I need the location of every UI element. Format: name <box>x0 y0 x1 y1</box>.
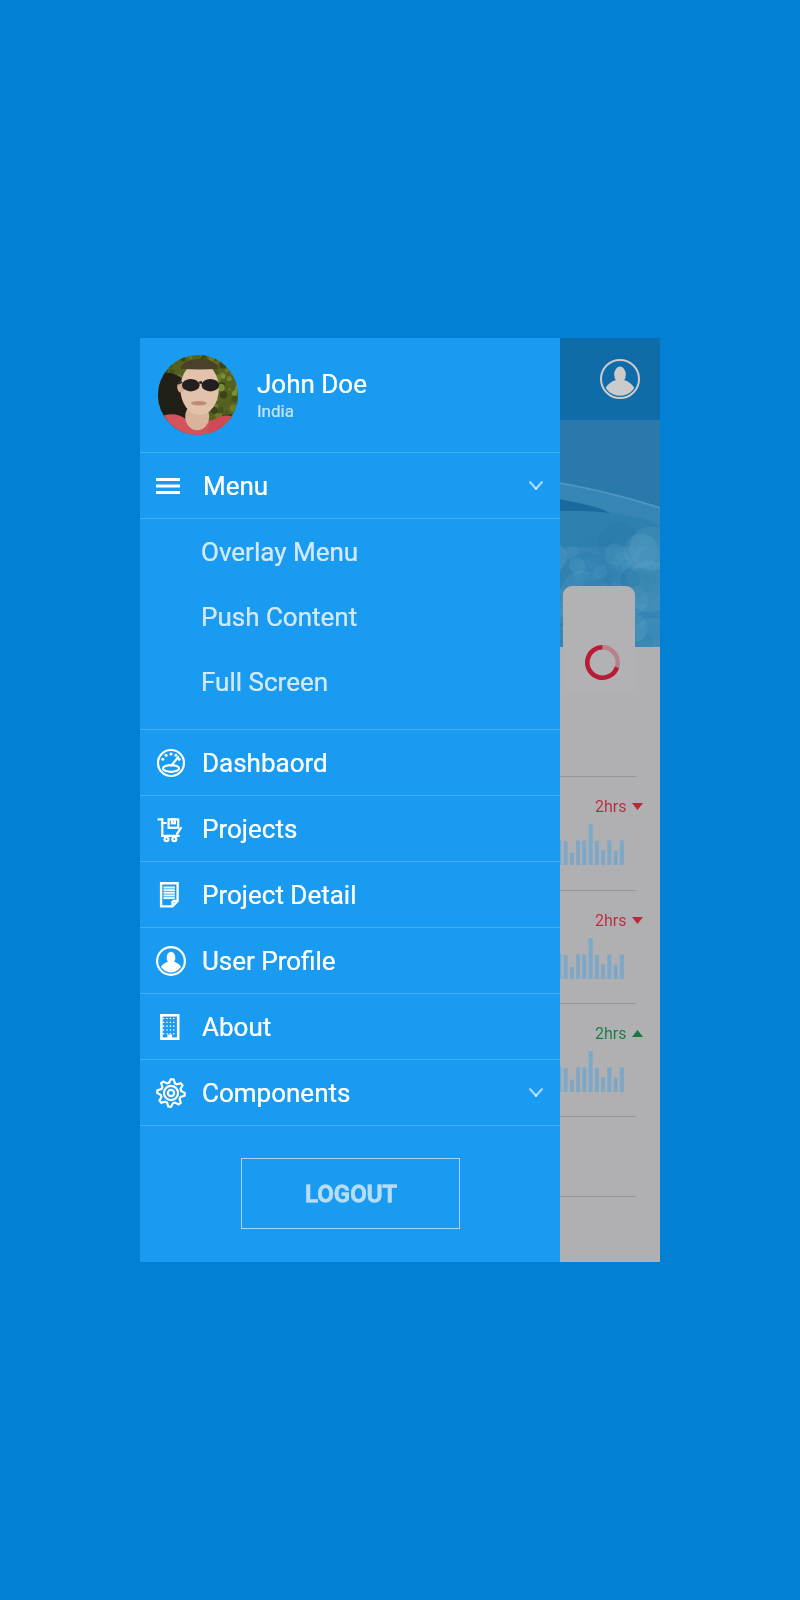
staticText: 2hrs <box>595 911 627 930</box>
staticText: John Doe <box>257 369 367 399</box>
button[interactable]: Overlay Menu <box>140 519 560 584</box>
button[interactable]: Menu <box>140 453 560 518</box>
staticText: LOGOUT <box>305 1180 397 1208</box>
button[interactable]: Projects <box>140 796 560 861</box>
button[interactable]: Profile <box>592 351 648 407</box>
staticText: Project Detail <box>202 880 357 910</box>
staticText: Projects <box>202 814 298 844</box>
staticText: Dashbaord <box>202 748 328 778</box>
staticText: Overlay Menu <box>201 537 359 567</box>
staticText: Push Content <box>201 602 358 632</box>
button[interactable]: Dashbaord <box>140 730 560 795</box>
staticText: 2hrs <box>595 797 627 816</box>
staticText: Menu <box>203 471 269 501</box>
button[interactable]: Full Screen <box>140 649 560 714</box>
staticText: Components <box>202 1078 351 1108</box>
staticText: 2hrs <box>595 1024 627 1043</box>
button[interactable]: Components <box>140 1060 560 1125</box>
staticText: Full Screen <box>201 667 329 697</box>
button[interactable]: LOGOUT <box>241 1158 460 1229</box>
button[interactable]: Push Content <box>140 584 560 649</box>
staticText: India <box>257 401 294 421</box>
button[interactable]: User Profile <box>140 928 560 993</box>
staticText: User Profile <box>202 946 336 976</box>
button[interactable]: Project Detail <box>140 862 560 927</box>
button[interactable]: Progress card <box>563 586 635 693</box>
button[interactable]: About <box>140 994 560 1059</box>
staticText: About <box>202 1012 272 1042</box>
